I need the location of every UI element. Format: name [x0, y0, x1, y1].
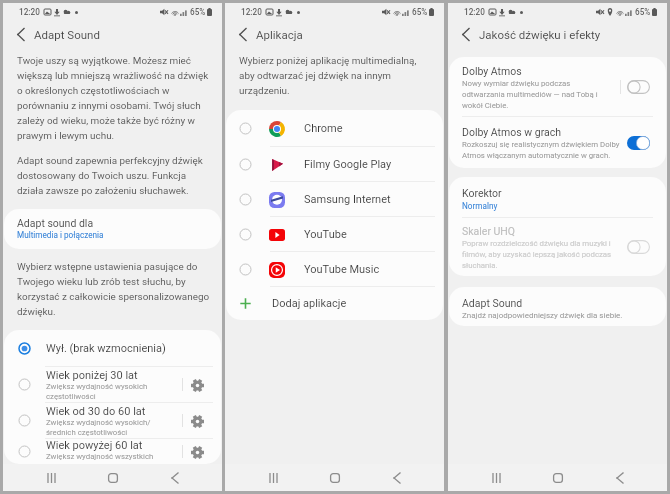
staticText: Zwiększ wydajność wysokich/ średnich czę…	[46, 418, 151, 437]
staticText: Normalny	[462, 201, 498, 211]
button[interactable]: Back	[605, 464, 635, 491]
button[interactable]: Recent apps	[481, 464, 511, 491]
button[interactable]: Dolby Atmos	[449, 57, 666, 116]
button[interactable]: Adapt sound dla	[4, 209, 221, 249]
staticText: Wył. (brak wzmocnienia)	[46, 342, 166, 355]
staticText: Multimedia i połączenia	[17, 230, 104, 240]
staticText: Adapt sound dla	[17, 217, 94, 229]
staticText: Filmy Google Play	[304, 158, 392, 171]
button[interactable]: Korektor	[449, 177, 666, 217]
button[interactable]: Home	[320, 464, 350, 491]
staticText: Skaler UHQ	[462, 225, 516, 237]
staticText: Popraw rozdzielczość dźwięku dla muzyki …	[462, 239, 612, 269]
button[interactable]: Wiek poniżej 30 lat	[4, 367, 221, 402]
button[interactable]: YouTube Music	[226, 252, 443, 286]
staticText: Chrome	[304, 122, 343, 135]
staticText: Zwiększ wydajność wysokich częstotliwośc…	[46, 382, 148, 401]
staticText: 12:20	[241, 7, 262, 17]
button[interactable]: Back	[9, 21, 33, 48]
button[interactable]: Wył. (brak wzmocnienia)	[4, 330, 221, 366]
button[interactable]: Samsung Internet	[226, 182, 443, 216]
button[interactable]: Chrome	[226, 110, 443, 146]
staticText: Wiek powyżej 60 lat	[46, 439, 143, 452]
staticText: Wybierz poniżej aplikację multimedialną,…	[239, 55, 433, 96]
staticText: 12:20	[464, 7, 485, 17]
button[interactable]: Turn on	[627, 240, 650, 254]
staticText: Nowy wymiar dźwięku podczas odtwarzania …	[462, 79, 598, 109]
staticText: YouTube Music	[304, 263, 380, 276]
staticText: Znajdź najodpowiedniejszy dźwięk dla sie…	[462, 311, 623, 320]
staticText: Zwiększ wydajność wszystkich częstotliwo…	[46, 452, 154, 464]
staticText: Adapt sound zapewnia perfekcyjny dźwięk …	[17, 155, 211, 196]
staticText: Samsung Internet	[304, 193, 391, 206]
staticText: YouTube	[304, 228, 347, 241]
staticText: Korektor	[462, 187, 502, 199]
button[interactable]: Settings	[187, 442, 207, 462]
button[interactable]: Recent apps	[36, 464, 66, 491]
button[interactable]: Skaler UHQ	[449, 218, 666, 276]
button[interactable]: Back	[454, 21, 478, 48]
button[interactable]: Dodaj aplikacje	[226, 287, 443, 320]
button[interactable]: Wiek od 30 do 60 lat	[4, 403, 221, 438]
staticText: Wybierz wstępne ustawienia pasujące do T…	[17, 261, 211, 317]
staticText: 65%	[412, 7, 428, 17]
button[interactable]: Home	[98, 464, 128, 491]
staticText: Adapt Sound	[462, 297, 523, 309]
button[interactable]: YouTube	[226, 217, 443, 251]
button[interactable]: Home	[543, 464, 573, 491]
button[interactable]: Recent apps	[258, 464, 288, 491]
button[interactable]: Dolby Atmos w grach	[449, 117, 666, 168]
button[interactable]: Filmy Google Play	[226, 147, 443, 181]
button[interactable]: Turn off	[627, 136, 650, 150]
staticText: Dolby Atmos	[462, 65, 522, 77]
staticText: 12:20	[19, 7, 40, 17]
staticText: Wiek poniżej 30 lat	[46, 369, 138, 382]
staticText: Dodaj aplikacje	[272, 297, 347, 310]
staticText: Rozkoszuj się realistycznym dźwiękiem Do…	[462, 140, 620, 159]
button[interactable]: Wiek powyżej 60 lat	[4, 439, 221, 464]
button[interactable]: Settings	[187, 375, 207, 395]
staticText: Wiek od 30 do 60 lat	[46, 405, 146, 418]
button[interactable]: Adapt Sound	[449, 287, 666, 326]
button[interactable]: Back	[382, 464, 412, 491]
staticText: Twoje uszy są wyjątkowe. Możesz mieć wię…	[17, 55, 211, 141]
staticText: 65%	[635, 7, 651, 17]
button[interactable]: Back	[231, 21, 255, 48]
button[interactable]: Back	[160, 464, 190, 491]
staticText: Aplikacja	[256, 28, 303, 41]
button[interactable]: Turn on	[627, 80, 650, 94]
staticText: Jakość dźwięku i efekty	[479, 28, 601, 41]
staticText: 65%	[190, 7, 206, 17]
staticText: Adapt Sound	[34, 28, 100, 41]
staticText: Dolby Atmos w grach	[462, 126, 561, 138]
button[interactable]: Settings	[187, 411, 207, 431]
